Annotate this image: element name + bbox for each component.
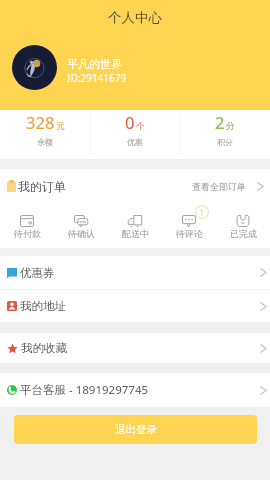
button[interactable]: 我的订单: [0, 169, 270, 199]
staticText: 我的订单: [18, 179, 66, 194]
button[interactable]: 2: [180, 110, 270, 147]
button[interactable]: 待确认: [54, 199, 108, 248]
button[interactable]: 配送中: [108, 199, 162, 248]
staticText: 待确认: [68, 228, 95, 239]
staticText: 元: [56, 121, 65, 132]
staticText: 个: [136, 121, 145, 132]
button[interactable]: 平台客服 - 18919297745: [0, 373, 270, 407]
staticText: 我的收藏: [21, 341, 67, 355]
staticText: 退出登录: [115, 423, 157, 436]
staticText: 分: [226, 121, 235, 132]
button[interactable]: 328: [0, 110, 90, 147]
button[interactable]: 我的地址: [0, 290, 270, 322]
staticText: 0: [125, 111, 135, 133]
button[interactable]: 退出登录: [14, 415, 257, 444]
staticText: ID:29141679: [67, 71, 127, 85]
button[interactable]: 我的收藏: [0, 333, 270, 363]
staticText: 查看全部订单: [192, 181, 246, 192]
staticText: 余额: [37, 137, 53, 147]
staticText: 2: [215, 111, 225, 133]
staticText: 个人中心: [108, 9, 162, 26]
staticText: 优惠券: [20, 266, 55, 280]
staticText: 配送中: [122, 228, 149, 239]
staticText: 1: [199, 206, 205, 218]
button[interactable]: 优惠券: [0, 256, 270, 289]
staticText: 我的地址: [20, 299, 66, 313]
button[interactable]: 1: [162, 199, 216, 248]
staticText: 平凡的世界: [67, 57, 122, 71]
staticText: 平台客服 - 18919297745: [20, 382, 149, 398]
button[interactable]: 已完成: [216, 199, 270, 248]
button[interactable]: 待付款: [0, 199, 54, 248]
staticText: 优惠: [127, 137, 143, 147]
staticText: 328: [26, 111, 55, 133]
staticText: 已完成: [230, 228, 257, 239]
button[interactable]: Profile photo: [12, 45, 57, 90]
button[interactable]: 0: [90, 110, 180, 147]
staticText: 待付款: [14, 228, 41, 239]
staticText: 待评论: [176, 228, 203, 239]
staticText: 积分: [217, 137, 233, 147]
